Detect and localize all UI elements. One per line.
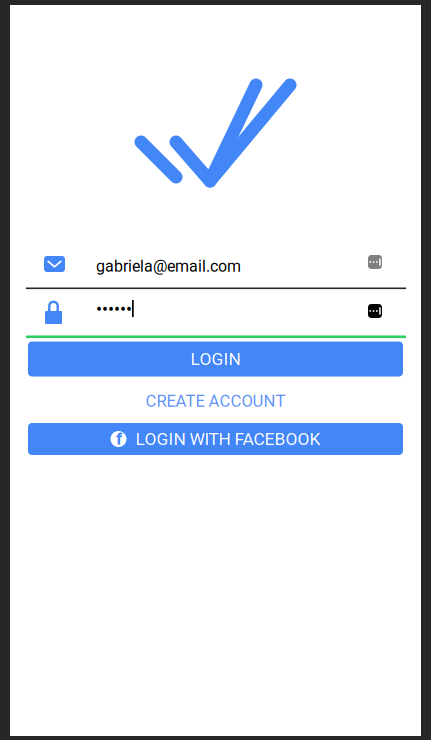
staticText: LOGIN WITH FACEBOOK [135, 429, 320, 449]
staticText: gabriela@email.com [96, 257, 241, 276]
button[interactable]: CREATE ACCOUNT [28, 388, 403, 414]
button[interactable]: f [28, 423, 403, 455]
staticText: •••••• [96, 299, 132, 320]
staticText: CREATE ACCOUNT [145, 391, 285, 411]
button[interactable]: LOGIN [28, 341, 403, 376]
staticText: LOGIN [190, 349, 240, 369]
staticText: f [116, 428, 122, 449]
